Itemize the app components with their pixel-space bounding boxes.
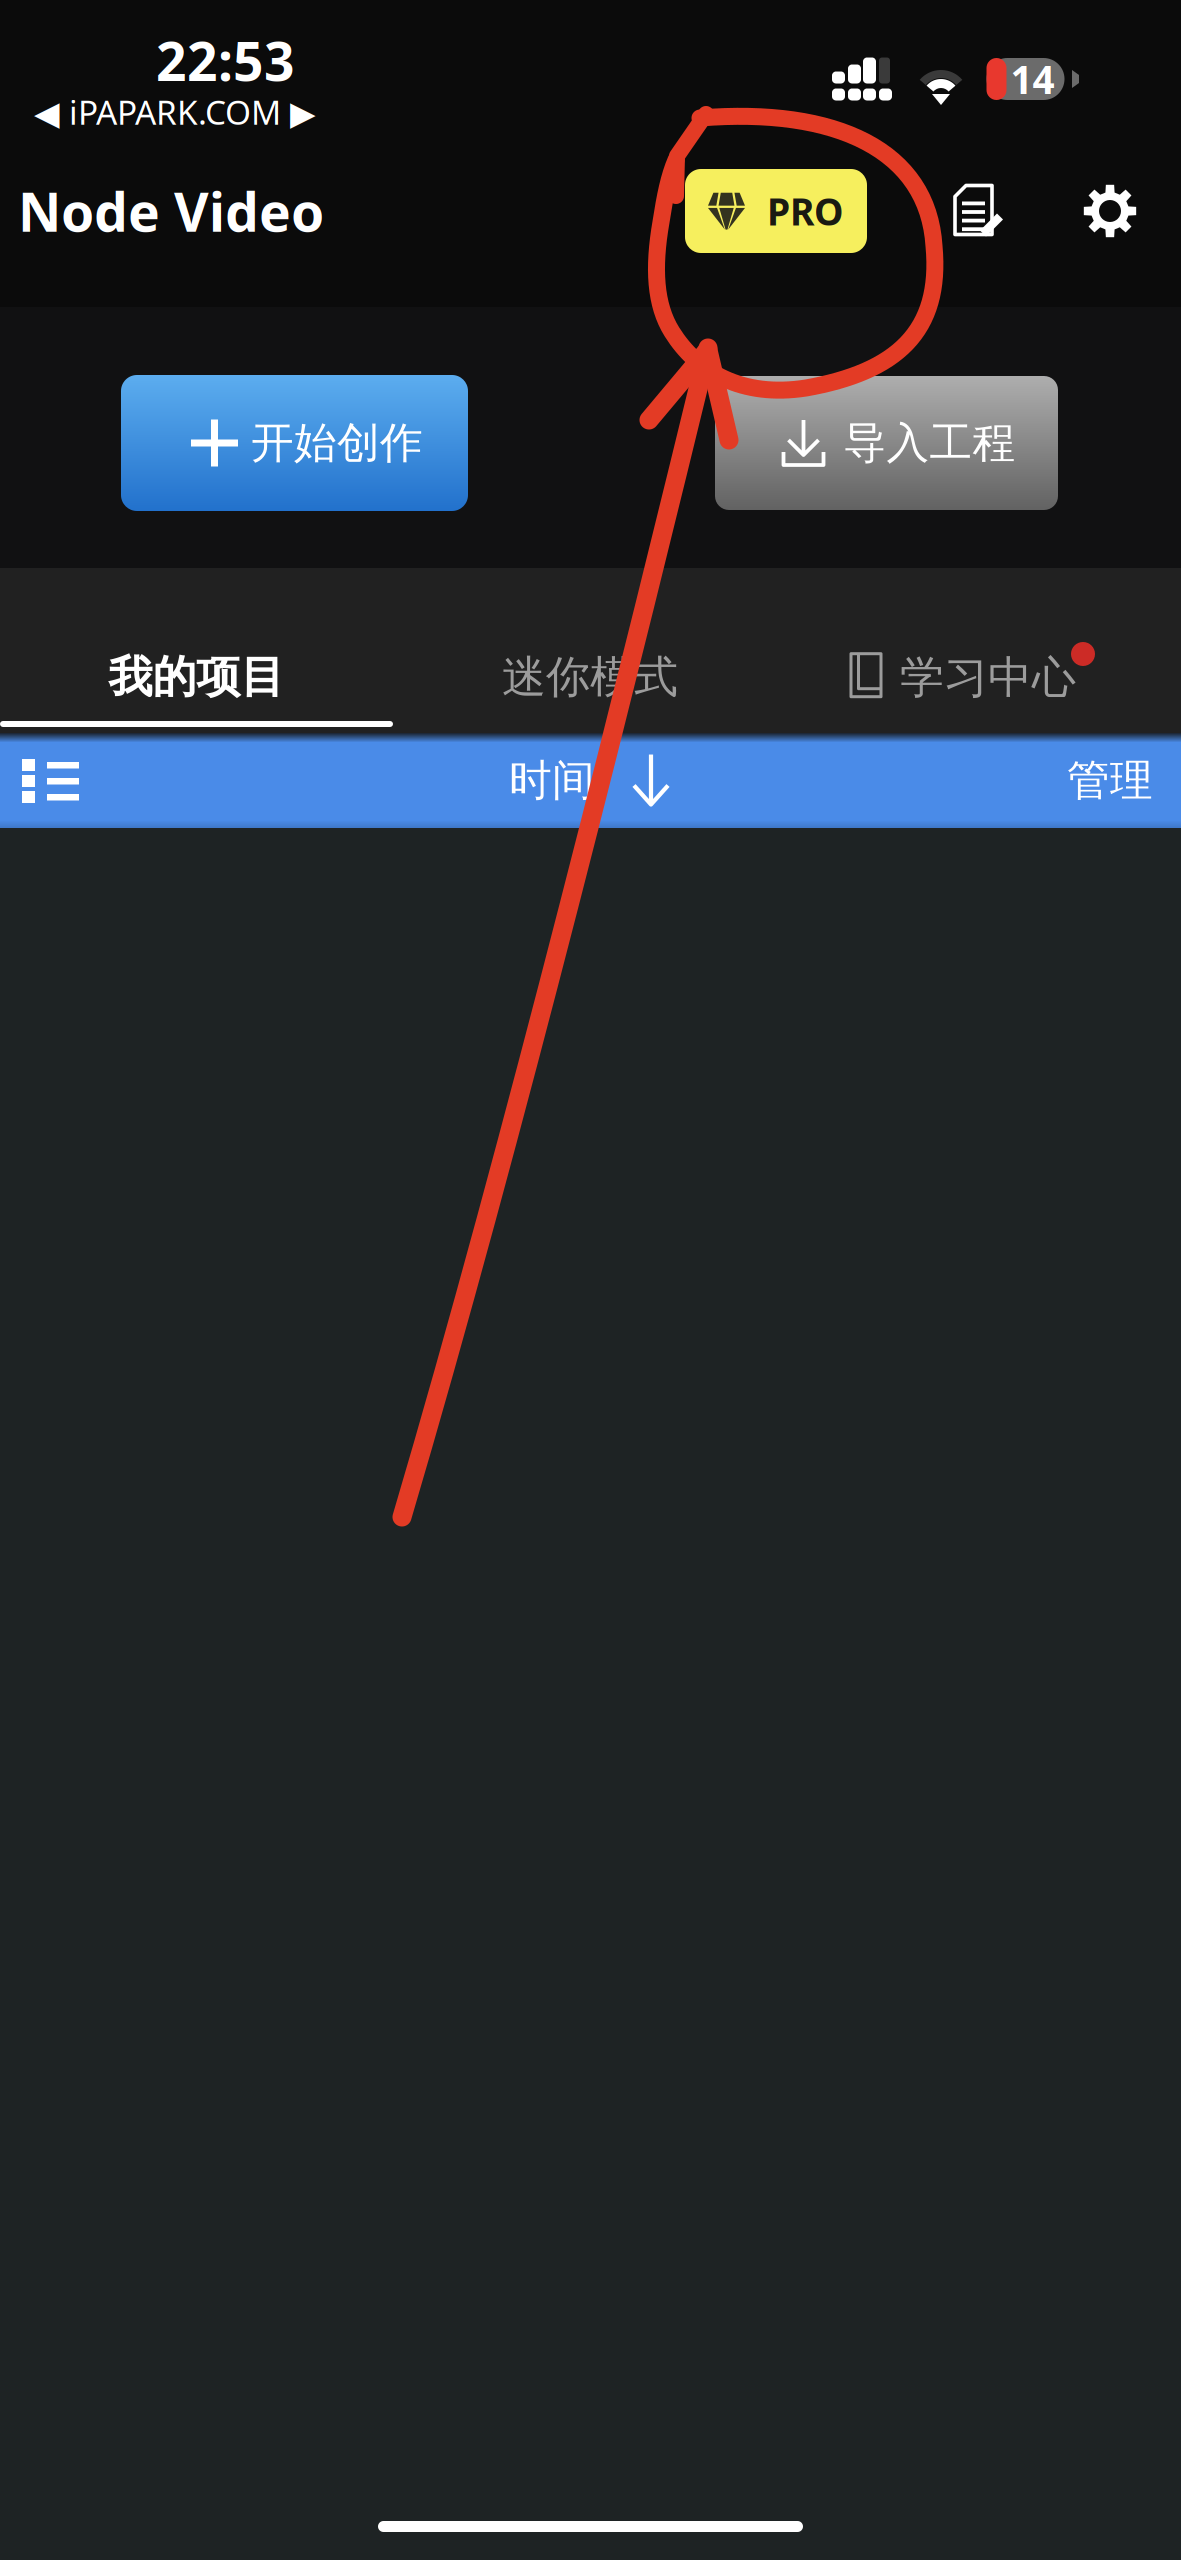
staticText: 22:53 — [156, 24, 295, 97]
staticText: 导入工程 — [843, 416, 1015, 470]
button[interactable]: 学习中心 — [787, 620, 1181, 720]
button[interactable]: 我的项目 — [0, 620, 393, 720]
staticText: 开始创作 — [251, 416, 423, 470]
staticText: 管理 — [1067, 754, 1153, 807]
button[interactable]: 导入工程 — [715, 376, 1058, 510]
staticText: 迷你模式 — [502, 649, 678, 705]
button[interactable]: 开始创作 — [121, 375, 468, 511]
button[interactable]: List layout — [22, 759, 79, 802]
button[interactable]: 时间 — [475, 753, 671, 807]
button[interactable]: 迷你模式 — [393, 620, 787, 720]
staticText: ◀ iPAPARK.COM ▶ — [34, 89, 316, 134]
staticText: PRO — [767, 186, 844, 236]
staticText: 时间 — [509, 754, 595, 807]
button[interactable]: PRO — [685, 169, 867, 253]
button[interactable]: Settings — [1083, 184, 1137, 238]
button[interactable]: Documents — [953, 183, 1005, 238]
staticText: 学习中心 — [900, 650, 1076, 705]
button[interactable]: 管理 — [1067, 754, 1153, 807]
staticText: 我的项目 — [108, 649, 284, 705]
staticText: 14 — [1010, 53, 1054, 105]
staticText: Node Video — [18, 175, 324, 247]
